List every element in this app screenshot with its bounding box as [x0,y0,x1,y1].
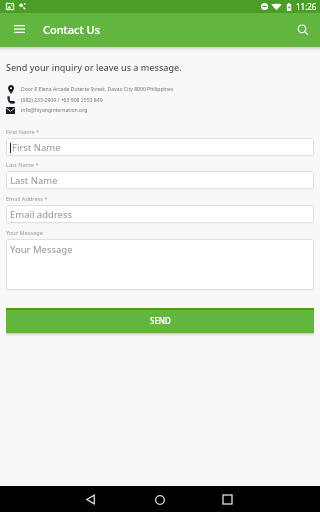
button[interactable]: Open navigation menu [2,12,36,46]
staticText: First Name * [6,128,40,136]
button[interactable]: Recent apps [215,487,240,512]
button[interactable]: Home [147,487,172,512]
staticText: info@hiyanginternation.org [21,107,88,114]
staticText: (082) 233-2909 / +63 908 2553 849 [21,97,103,104]
staticText: 11:26 [296,1,317,12]
staticText: SEND [150,315,171,326]
button[interactable]: Back [78,487,103,512]
button[interactable]: Your Message [6,239,314,290]
staticText: Email Address * [6,195,48,203]
button[interactable]: info@hiyanginternation.org [0,105,320,115]
staticText: First Name [12,141,61,154]
staticText: Last Name [10,174,58,187]
staticText: Your Message [6,229,43,237]
button[interactable]: (082) 233-2909 / +63 908 2553 849 [0,95,320,105]
button[interactable]: Email address [6,205,314,223]
button[interactable]: Last Name [6,171,314,189]
button[interactable]: Search [286,13,320,47]
staticText: Door 8 Elena Arcade Duterte Street, Dava… [21,86,174,93]
button[interactable]: First Name [6,138,314,156]
staticText: Your Message [10,243,73,256]
staticText: Email address [10,208,73,221]
button[interactable]: Door 8 Elena Arcade Duterte Street, Dava… [0,84,320,94]
staticText: Send your inquiry or leave us a message. [6,61,182,73]
staticText: Contact Us [43,22,101,37]
staticText: Last Name * [6,161,39,169]
button[interactable]: SEND [6,308,314,333]
